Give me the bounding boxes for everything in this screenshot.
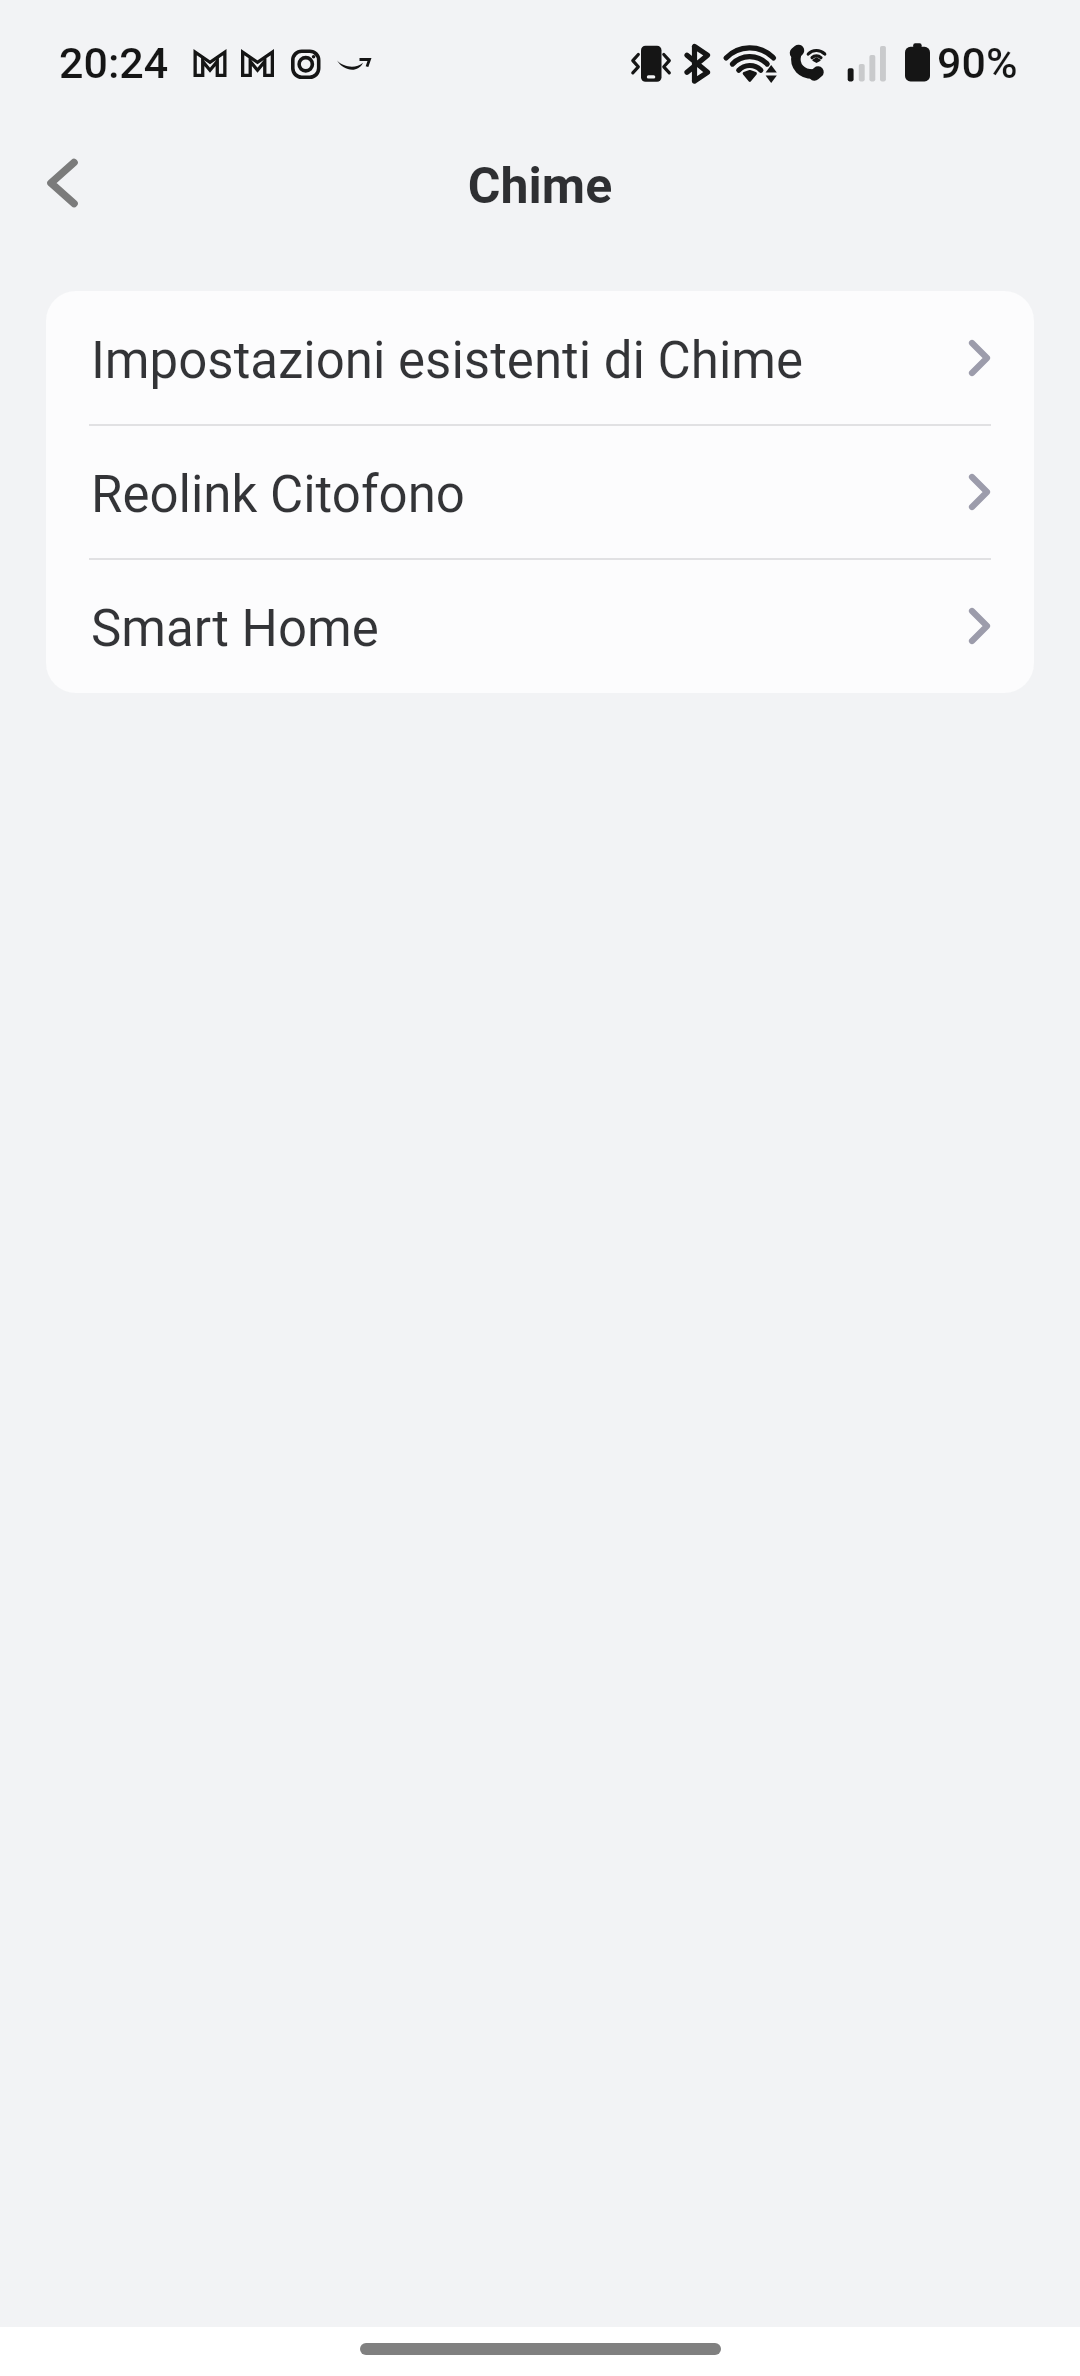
staticText: Smart Home [91, 599, 379, 659]
button[interactable]: Impostazioni esistenti di Chime [46, 291, 1034, 425]
button[interactable]: Smart Home [46, 559, 1034, 693]
staticText: Impostazioni esistenti di Chime [91, 331, 804, 391]
staticText: Chime [0, 157, 1080, 216]
staticText: 90% [937, 38, 1018, 88]
staticText: 20:24 [59, 38, 169, 88]
button[interactable]: Back [21, 141, 105, 225]
button[interactable]: Reolink Citofono [46, 425, 1034, 559]
staticText: Reolink Citofono [91, 465, 465, 525]
